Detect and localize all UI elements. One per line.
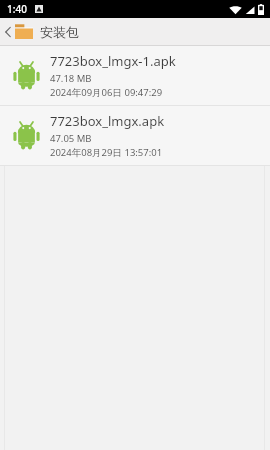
staticText: 47.05 MB xyxy=(50,132,92,145)
button[interactable]: 7723box_lmgx-1.apk xyxy=(0,46,270,105)
staticText: 2024年09月06日 09:47:29 xyxy=(50,86,163,99)
button[interactable]: Back xyxy=(0,18,14,45)
staticText: 47.18 MB xyxy=(50,72,92,85)
staticText: 7723box_lmgx-1.apk xyxy=(50,52,176,70)
button[interactable]: 7723box_lmgx.apk xyxy=(0,106,270,165)
staticText: 2024年08月29日 13:57:01 xyxy=(50,146,163,159)
staticText: 7723box_lmgx.apk xyxy=(50,112,165,130)
staticText: 1:40 xyxy=(7,2,27,16)
staticText: 安装包 xyxy=(40,24,79,40)
